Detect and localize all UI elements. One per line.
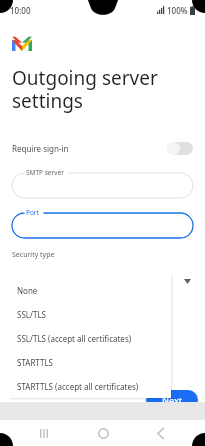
button[interactable]: Open security type dropdown — [178, 272, 196, 290]
staticText: None — [17, 285, 38, 296]
staticText: Port — [26, 208, 39, 217]
button[interactable]: Home — [88, 420, 118, 446]
staticText: Security type — [12, 250, 55, 260]
staticText: 10:00 — [10, 5, 31, 16]
staticText: Outgoing server settings — [12, 65, 158, 114]
button[interactable]: None — [8, 278, 171, 302]
staticText: Require sign-in — [12, 143, 69, 154]
button[interactable]: STARTTLS (accept all certificates) — [8, 374, 171, 398]
staticText: STARTTLS — [17, 357, 54, 368]
button[interactable]: SSL/TLS — [8, 302, 171, 326]
button[interactable]: Recent apps — [29, 420, 59, 446]
button[interactable]: Port — [12, 208, 193, 238]
button[interactable]: Back — [146, 420, 176, 446]
staticText: STARTTLS (accept all certificates) — [17, 381, 139, 392]
staticText: SSL/TLS — [17, 309, 46, 320]
button[interactable]: STARTTLS — [8, 350, 171, 374]
button[interactable]: Next — [146, 390, 198, 410]
staticText: 100% — [167, 5, 188, 16]
button[interactable]: Require sign-in toggle — [167, 142, 193, 155]
staticText: Next — [162, 394, 183, 406]
button[interactable]: Require sign-in — [0, 134, 205, 162]
staticText: SMTP server — [26, 168, 64, 177]
staticText: SSL/TLS (accept all certificates) — [17, 333, 132, 344]
button[interactable]: SMTP server — [12, 168, 193, 198]
button[interactable]: SSL/TLS (accept all certificates) — [8, 326, 171, 350]
